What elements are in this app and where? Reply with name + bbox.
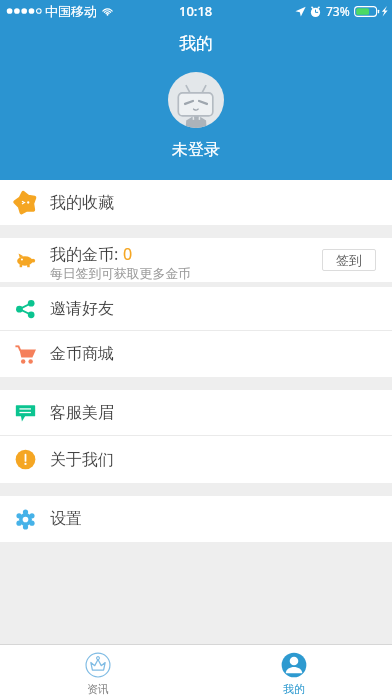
button[interactable]: 我的收藏: [0, 180, 392, 225]
staticText: 资讯: [87, 682, 109, 696]
staticText: 我的收藏: [50, 193, 114, 213]
button[interactable]: 我的: [196, 645, 392, 696]
staticText: 我的金币:: [50, 243, 123, 265]
staticText: 我的: [179, 33, 213, 54]
staticText: 0: [123, 243, 133, 265]
button[interactable]: 设置: [0, 496, 392, 542]
button[interactable]: 我的金币:: [0, 238, 392, 282]
staticText: 关于我们: [50, 450, 114, 470]
staticText: 客服美眉: [50, 403, 114, 423]
staticText: 我的: [283, 682, 305, 696]
button[interactable]: 签到: [322, 249, 376, 271]
staticText: 未登录: [172, 140, 220, 160]
staticText: 设置: [50, 509, 82, 529]
button[interactable]: 客服美眉: [0, 390, 392, 435]
button[interactable]: 资讯: [0, 645, 196, 696]
staticText: 每日签到可获取更多金币: [50, 266, 191, 282]
staticText: 金币商城: [50, 344, 114, 364]
staticText: 73%: [326, 3, 350, 19]
staticText: 邀请好友: [50, 299, 114, 319]
button[interactable]: 金币商城: [0, 331, 392, 377]
staticText: 中国移动: [45, 3, 97, 19]
button[interactable]: 邀请好友: [0, 287, 392, 330]
button[interactable]: 关于我们: [0, 436, 392, 483]
staticText: 10:18: [179, 2, 213, 20]
staticText: 签到: [336, 252, 362, 268]
